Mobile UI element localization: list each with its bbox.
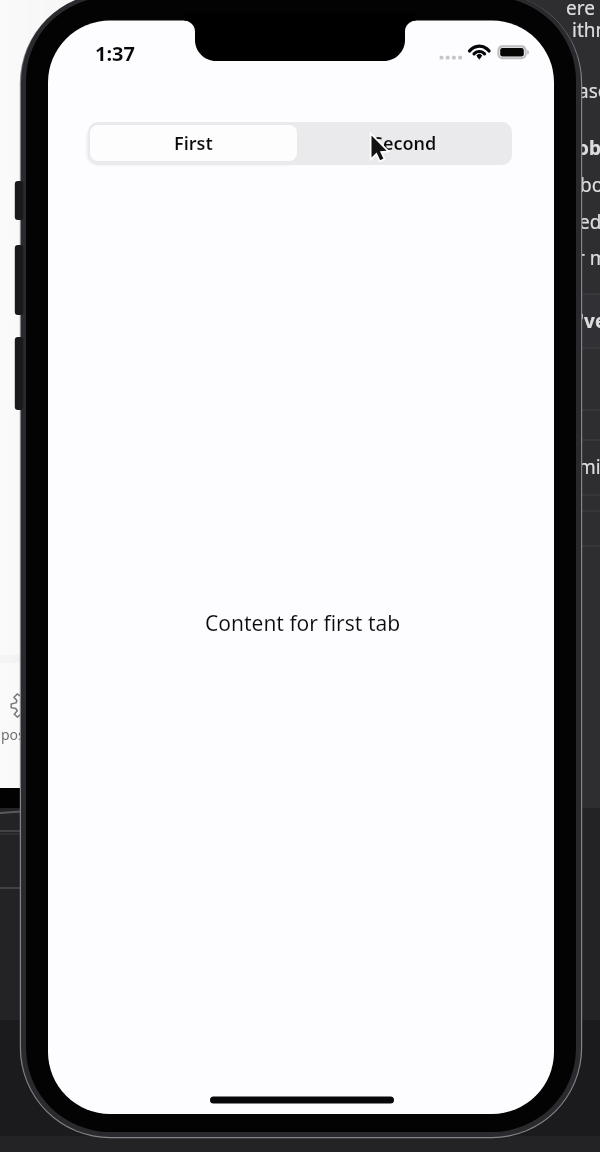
staticText: ed bbox=[579, 209, 600, 235]
staticText: ere to bbox=[566, 0, 600, 21]
staticText: Content for first tab bbox=[205, 609, 401, 638]
staticText: ithm bbox=[572, 17, 600, 43]
staticText: pos bbox=[1, 725, 25, 744]
staticText: 1:37 bbox=[95, 40, 135, 67]
staticText: bo bbox=[580, 172, 600, 198]
button[interactable]: Second bbox=[297, 122, 512, 165]
staticText: Second bbox=[373, 131, 437, 156]
staticText: ase bbox=[578, 78, 600, 104]
staticText: First bbox=[174, 131, 213, 156]
button[interactable]: First bbox=[90, 125, 297, 161]
staticText: obl bbox=[577, 135, 600, 161]
staticText: 've bbox=[579, 308, 600, 334]
staticText: mi bbox=[578, 454, 600, 480]
staticText: r m bbox=[577, 245, 600, 271]
